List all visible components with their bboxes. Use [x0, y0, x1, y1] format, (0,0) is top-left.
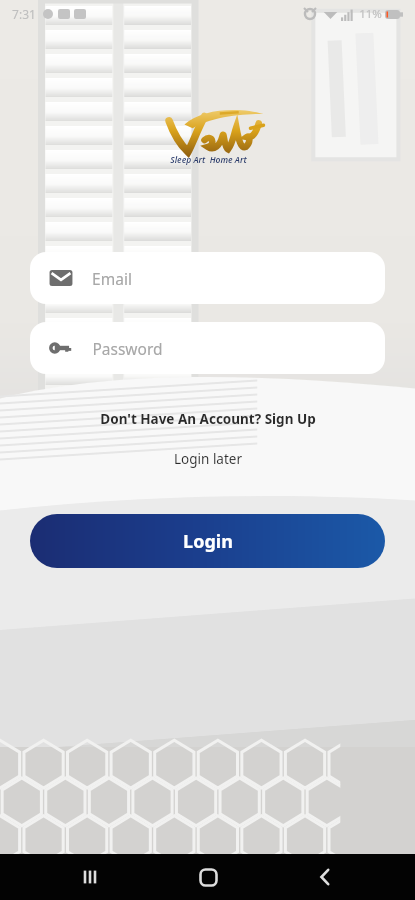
staticText: Password — [92, 338, 163, 359]
staticText: 7:31 — [12, 6, 36, 22]
button[interactable]: Back — [297, 854, 353, 900]
button[interactable]: Login later — [0, 450, 415, 468]
button[interactable]: Password — [30, 322, 385, 374]
staticText: Don't Have An Account? Sign Up — [100, 410, 316, 428]
staticText: 11% — [359, 6, 382, 22]
staticText: Login later — [174, 450, 242, 468]
button[interactable]: Email — [30, 252, 385, 304]
button[interactable]: Home — [180, 854, 236, 900]
button[interactable]: Login — [30, 514, 385, 568]
button[interactable]: Recents — [62, 854, 118, 900]
button[interactable]: Don't Have An Account? Sign Up — [0, 410, 415, 428]
staticText: Sleep Art Home Art — [170, 154, 247, 166]
staticText: Login — [183, 529, 233, 554]
staticText: Email — [92, 268, 132, 289]
